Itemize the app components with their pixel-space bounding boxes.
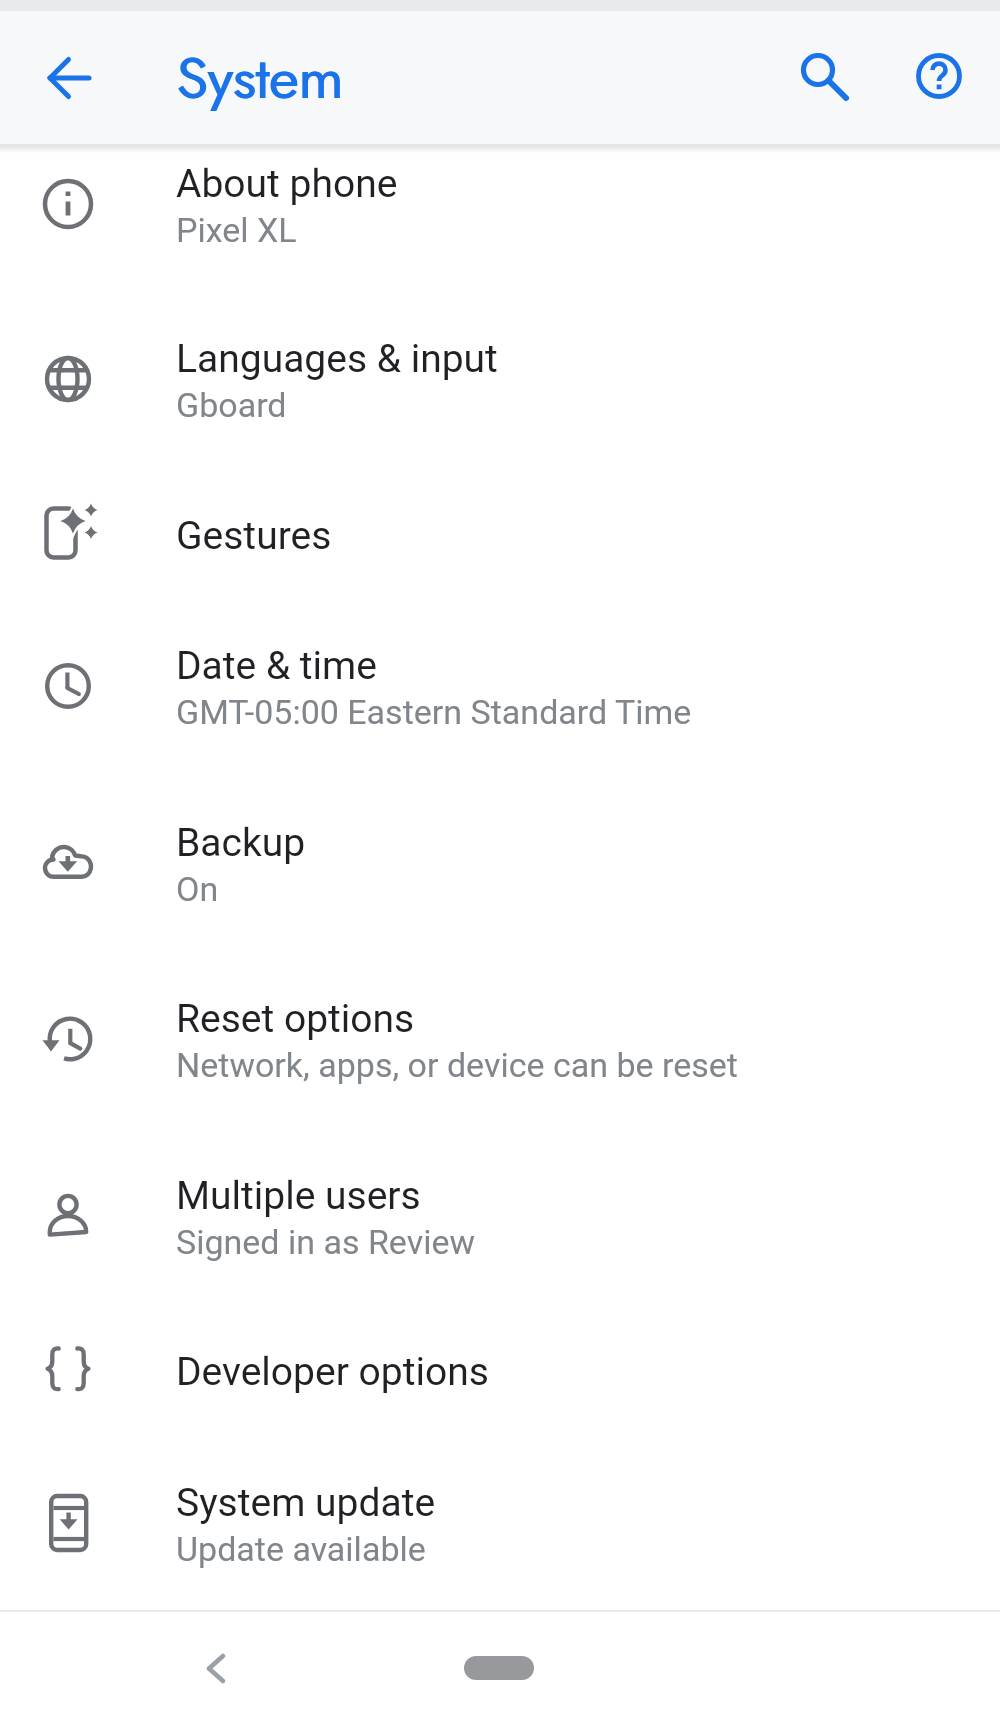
staticText: Date & time: [176, 643, 377, 689]
button[interactable]: Gestures: [0, 467, 1000, 599]
button[interactable]: System update: [0, 1435, 1000, 1611]
staticText: System: [177, 36, 344, 120]
button[interactable]: Multiple users: [0, 1128, 1000, 1304]
staticText: Update available: [176, 1529, 426, 1569]
staticText: Reset options: [176, 996, 415, 1042]
button[interactable]: [464, 1656, 534, 1680]
staticText: Multiple users: [176, 1173, 421, 1219]
button[interactable]: [790, 48, 850, 108]
staticText: System: [176, 36, 343, 120]
button[interactable]: Date & time: [0, 598, 1000, 774]
button[interactable]: [190, 1648, 234, 1692]
staticText: On: [176, 869, 219, 909]
button[interactable]: Languages & input: [0, 291, 1000, 467]
staticText: System update: [176, 1480, 436, 1526]
staticText: About phone: [176, 161, 398, 207]
button[interactable]: Developer options: [0, 1303, 1000, 1435]
staticText: Gboard: [176, 385, 287, 425]
button[interactable]: [910, 47, 968, 105]
staticText: Pixel XL: [176, 210, 297, 250]
button[interactable]: Backup: [0, 775, 1000, 951]
button[interactable]: [40, 49, 96, 105]
staticText: Developer options: [176, 1349, 489, 1395]
staticText: Gestures: [176, 513, 332, 559]
staticText: Backup: [176, 820, 306, 866]
staticText: GMT-05:00 Eastern Standard Time: [176, 692, 692, 732]
staticText: Languages & input: [176, 336, 498, 382]
staticText: Signed in as Review: [176, 1222, 475, 1262]
button[interactable]: About phone: [0, 116, 1000, 292]
button[interactable]: Reset options: [0, 951, 1000, 1127]
staticText: Network, apps, or device can be reset: [176, 1045, 738, 1085]
